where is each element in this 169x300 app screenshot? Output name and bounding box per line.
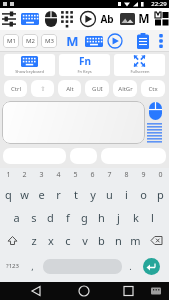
button[interactable]: [22, 8, 43, 30]
button[interactable]: g: [76, 206, 93, 229]
button[interactable]: Fullscreen: [114, 54, 165, 76]
button[interactable]: c: [59, 229, 76, 252]
button[interactable]: [127, 282, 169, 300]
button[interactable]: 9: [135, 168, 152, 182]
staticText: Ctx: [148, 85, 158, 93]
button[interactable]: M1: [3, 34, 19, 48]
staticText: r: [56, 187, 61, 202]
staticText: M: [66, 32, 79, 50]
button[interactable]: 5: [67, 168, 84, 182]
button[interactable]: M3: [41, 34, 57, 48]
button[interactable]: GUI: [85, 80, 109, 97]
button[interactable]: [70, 148, 97, 164]
button[interactable]: [85, 282, 127, 300]
button[interactable]: [2, 101, 145, 144]
button[interactable]: [101, 148, 166, 164]
button[interactable]: ?123: [0, 252, 24, 280]
button[interactable]: k: [127, 206, 144, 229]
staticText: .: [129, 260, 132, 272]
button[interactable]: [0, 282, 43, 300]
button[interactable]: 0: [152, 168, 169, 182]
staticText: k: [133, 210, 139, 225]
button[interactable]: [143, 258, 160, 275]
button[interactable]: ⇧: [31, 80, 54, 97]
button[interactable]: .: [122, 252, 139, 280]
staticText: M3: [45, 37, 54, 45]
button[interactable]: 2: [16, 168, 33, 182]
staticText: 9: [141, 170, 146, 180]
button[interactable]: 3: [33, 168, 50, 182]
button[interactable]: p: [152, 182, 169, 206]
button[interactable]: h: [93, 206, 110, 229]
button[interactable]: [43, 259, 122, 274]
button[interactable]: [85, 8, 106, 30]
staticText: Show keyboard: [15, 69, 44, 74]
staticText: 3: [39, 170, 44, 180]
button[interactable]: b: [93, 229, 110, 252]
button[interactable]: M2: [22, 34, 38, 48]
button[interactable]: [106, 8, 127, 30]
button[interactable]: [149, 101, 167, 144]
button[interactable]: [43, 8, 64, 30]
button[interactable]: 4: [50, 168, 67, 182]
staticText: 6: [90, 170, 95, 180]
button[interactable]: i: [118, 182, 135, 206]
button[interactable]: Alt: [58, 80, 81, 97]
button[interactable]: y: [84, 182, 101, 206]
button[interactable]: r: [50, 182, 67, 206]
button[interactable]: [0, 8, 22, 30]
button[interactable]: 7: [101, 168, 118, 182]
staticText: s: [31, 210, 37, 225]
button[interactable]: f: [59, 206, 76, 229]
button[interactable]: d: [42, 206, 59, 229]
button[interactable]: 8: [118, 168, 135, 182]
button[interactable]: u: [101, 182, 118, 206]
button[interactable]: m: [127, 229, 144, 252]
staticText: Fn: [79, 54, 91, 68]
button[interactable]: s: [25, 206, 42, 229]
button[interactable]: [127, 8, 148, 30]
staticText: 7: [107, 170, 112, 180]
button[interactable]: z: [25, 229, 42, 252]
button[interactable]: [148, 8, 169, 30]
button[interactable]: [144, 229, 169, 252]
staticText: 22:29: [151, 0, 167, 8]
button[interactable]: w: [16, 182, 33, 206]
button[interactable]: e: [33, 182, 50, 206]
button[interactable]: v: [76, 229, 93, 252]
staticText: Fullscreen: [130, 69, 150, 74]
button[interactable]: Fn: [59, 54, 110, 76]
staticText: q: [5, 187, 12, 202]
staticText: z: [31, 233, 37, 248]
button[interactable]: n: [110, 229, 127, 252]
button[interactable]: ,: [24, 252, 40, 280]
button[interactable]: l: [144, 206, 161, 229]
staticText: a: [13, 210, 20, 225]
staticText: 5: [73, 170, 78, 180]
button[interactable]: AltGr: [113, 80, 137, 97]
button[interactable]: [3, 148, 66, 164]
button[interactable]: a: [8, 206, 25, 229]
button[interactable]: 6: [84, 168, 101, 182]
button[interactable]: [0, 229, 25, 252]
button[interactable]: j: [110, 206, 127, 229]
staticText: b: [98, 233, 105, 248]
staticText: u: [106, 187, 113, 202]
button[interactable]: Ctx: [141, 80, 165, 97]
button[interactable]: x: [42, 229, 59, 252]
staticText: e: [38, 187, 45, 202]
staticText: o: [140, 187, 147, 202]
button[interactable]: 1: [0, 168, 16, 182]
button[interactable]: t: [67, 182, 84, 206]
staticText: c: [65, 233, 71, 248]
button[interactable]: [43, 282, 85, 300]
staticText: Alt: [66, 85, 74, 93]
button[interactable]: Ctrl: [4, 80, 27, 97]
button[interactable]: o: [135, 182, 152, 206]
button[interactable]: Show keyboard: [4, 54, 55, 76]
button[interactable]: [64, 8, 85, 30]
staticText: ⇧: [40, 85, 46, 92]
staticText: g: [81, 210, 88, 225]
button[interactable]: q: [0, 182, 16, 206]
staticText: 2: [22, 170, 27, 180]
